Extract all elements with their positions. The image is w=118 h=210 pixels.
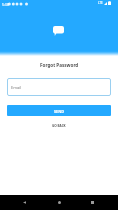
staticText: LTE xyxy=(98,1,103,5)
button[interactable]: Back xyxy=(16,195,33,210)
button[interactable]: GO BACK xyxy=(49,123,69,129)
staticText: GO BACK xyxy=(52,124,66,128)
button[interactable]: Home xyxy=(51,195,68,210)
button[interactable]: Recents xyxy=(84,195,101,210)
staticText: 5:38 xyxy=(2,2,9,7)
staticText: Email xyxy=(11,85,22,90)
button[interactable]: SEND xyxy=(7,105,111,116)
button[interactable]: Email xyxy=(7,78,111,96)
staticText: Forgot Password xyxy=(40,62,79,68)
staticText: SEND xyxy=(54,109,65,114)
